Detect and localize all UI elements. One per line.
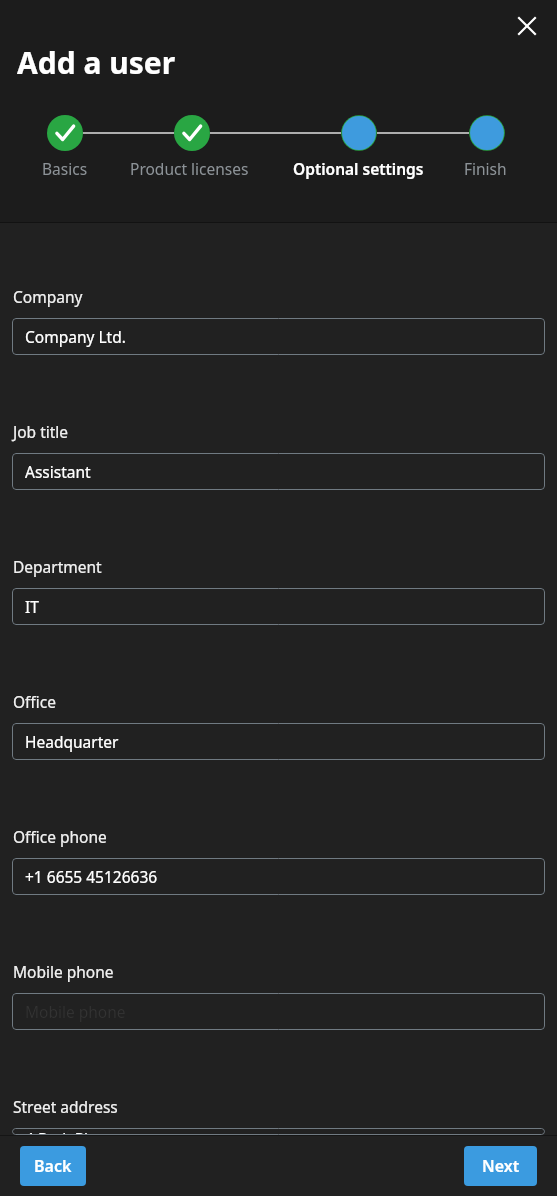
button[interactable]: Basics — [42, 158, 88, 179]
staticText: Headquarter — [25, 731, 119, 752]
staticText: Department — [13, 556, 102, 577]
staticText: Office — [13, 691, 56, 712]
staticText: Assistant — [25, 461, 91, 482]
staticText: Office phone — [13, 826, 107, 847]
staticText: Add a user — [17, 42, 176, 83]
staticText: Job title — [13, 421, 69, 442]
staticText: Company — [13, 286, 83, 307]
staticText: Mobile phone — [13, 961, 114, 982]
button[interactable]: Back — [20, 1146, 86, 1186]
staticText: Next — [482, 1155, 520, 1177]
staticText: 4 Park Plz — [25, 1128, 96, 1135]
staticText: Company Ltd. — [25, 326, 126, 347]
button[interactable]: Mobile phone — [12, 993, 545, 1030]
button[interactable]: Headquarter — [12, 723, 545, 760]
button[interactable]: Close — [509, 8, 545, 44]
button[interactable]: 4 Park Plz — [12, 1128, 545, 1135]
staticText: IT — [25, 596, 39, 617]
button[interactable]: Product licenses — [130, 158, 249, 179]
button[interactable]: +1 6655 45126636 — [12, 858, 545, 895]
staticText: Street address — [13, 1096, 118, 1117]
button[interactable]: Finish — [464, 158, 507, 179]
button[interactable]: Next — [464, 1146, 537, 1186]
button[interactable]: Assistant — [12, 453, 545, 490]
staticText: Mobile phone — [25, 1001, 126, 1022]
staticText: +1 6655 45126636 — [25, 866, 158, 887]
button[interactable]: Optional settings — [293, 158, 424, 179]
button[interactable]: Company Ltd. — [12, 318, 545, 355]
button[interactable]: IT — [12, 588, 545, 625]
staticText: Back — [34, 1155, 72, 1177]
